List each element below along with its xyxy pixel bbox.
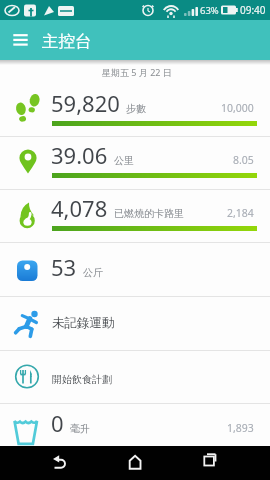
- staticText: 4,078: [51, 193, 108, 223]
- staticText: 2,184: [227, 206, 254, 220]
- staticText: 開始飲食計劃: [52, 373, 112, 386]
- button[interactable]: [107, 446, 163, 480]
- staticText: 09:40: [240, 3, 266, 17]
- staticText: 10,000: [221, 101, 254, 115]
- button[interactable]: 59,820: [0, 85, 270, 137]
- staticText: 0: [51, 408, 64, 438]
- staticText: 39.06: [51, 140, 108, 170]
- staticText: 未記錄運動: [52, 315, 115, 331]
- staticText: 53: [51, 252, 77, 282]
- button[interactable]: 39.06: [0, 137, 270, 190]
- button[interactable]: 0: [0, 404, 270, 446]
- staticText: 星期五 5 月 22 日: [102, 66, 172, 78]
- button[interactable]: [0, 20, 40, 60]
- staticText: 步數: [126, 102, 146, 115]
- staticText: 8.05: [233, 153, 254, 167]
- staticText: 公斤: [83, 266, 103, 279]
- button[interactable]: [181, 446, 237, 480]
- staticText: 1,893: [227, 421, 254, 435]
- staticText: 主控台: [42, 31, 92, 52]
- staticText: 59,820: [51, 88, 120, 118]
- button[interactable]: 53: [0, 243, 270, 297]
- button[interactable]: 未記錄運動: [0, 297, 270, 351]
- staticText: 63%: [200, 4, 219, 17]
- button[interactable]: 4,078: [0, 190, 270, 243]
- staticText: 已燃燒的卡路里: [114, 207, 184, 220]
- staticText: 毫升: [70, 422, 90, 435]
- button[interactable]: 開始飲食計劃: [0, 351, 270, 404]
- staticText: 公里: [114, 154, 134, 167]
- button[interactable]: [30, 446, 86, 480]
